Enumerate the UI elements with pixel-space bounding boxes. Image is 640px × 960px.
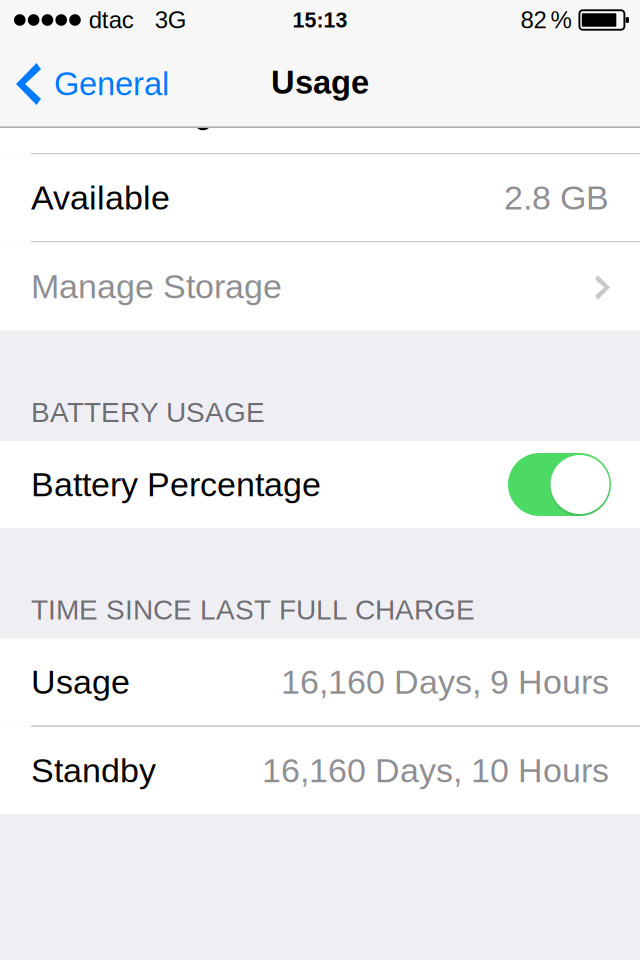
staticText: 82 % [520,7,571,33]
staticText: Standby [31,751,156,789]
button[interactable]: Manage Storage [0,242,640,330]
staticText: 16,160 Days, 10 Hours [262,751,609,789]
staticText: BATTERY USAGE [31,397,265,428]
staticText: Battery Percentage [31,465,321,503]
staticText: 3G [155,7,187,33]
staticText: Manage Storage [31,267,282,305]
staticText: Available [31,179,170,217]
staticText: General [54,66,169,102]
staticText: 16,160 Days, 9 Hours [281,663,609,701]
staticText: 2.8 GB [504,179,609,217]
staticText: dtac [89,7,134,33]
staticText: Usage [31,663,130,701]
staticText: 15:13 [292,8,347,32]
staticText: TIME SINCE LAST FULL CHARGE [31,594,475,625]
staticText: Usage [271,64,369,101]
button[interactable]: Battery Percentage [508,453,611,516]
button[interactable]: General [0,40,183,128]
